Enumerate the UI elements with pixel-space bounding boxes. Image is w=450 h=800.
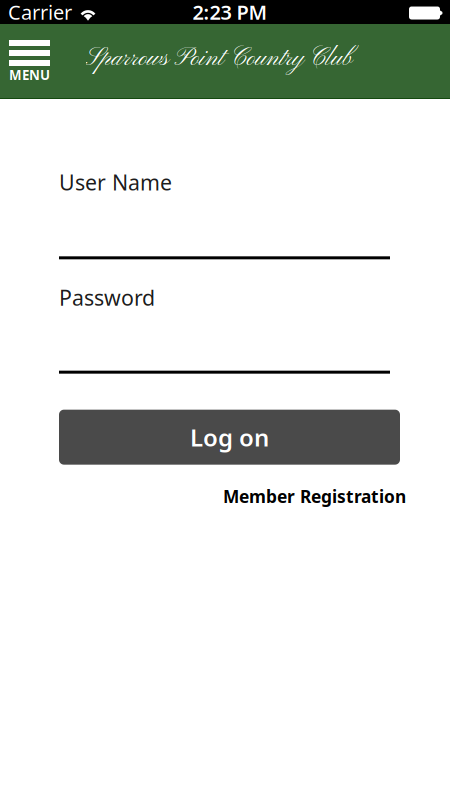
button[interactable]: Member Registration [59, 485, 406, 508]
staticText: User Name [59, 168, 172, 196]
staticText: Log on [190, 421, 269, 453]
staticText: Member Registration [223, 485, 406, 508]
staticText: Sparrows Point Country Club [85, 43, 352, 75]
staticText: 2:23 PM [192, 0, 267, 25]
button[interactable]: Menu [0, 24, 50, 98]
button[interactable]: Password [59, 283, 390, 374]
staticText: Carrier [8, 0, 72, 25]
staticText: MENU [9, 66, 50, 84]
button[interactable]: User Name [59, 168, 390, 259]
staticText: Password [59, 283, 155, 312]
button[interactable]: Log on [59, 410, 400, 465]
